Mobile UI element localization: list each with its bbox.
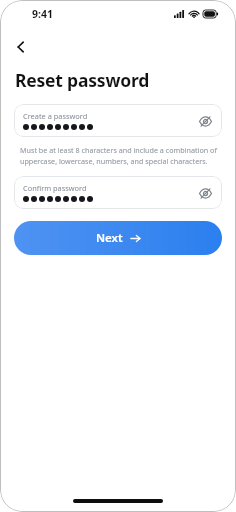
staticText: Next: [96, 230, 123, 246]
button[interactable]: Confirm password: [14, 176, 222, 209]
staticText: Confirm password: [23, 183, 87, 193]
staticText: 9:41: [32, 7, 53, 21]
button[interactable]: Back: [6, 32, 36, 62]
staticText: Create a password: [23, 111, 88, 121]
staticText: Reset password: [15, 68, 150, 92]
button[interactable]: Create a password: [14, 104, 222, 137]
staticText: Must be at least 8 characters and includ…: [20, 145, 220, 166]
button[interactable]: Next: [14, 221, 222, 255]
button[interactable]: Show create password: [194, 110, 216, 132]
button[interactable]: Show confirm password: [194, 182, 216, 204]
